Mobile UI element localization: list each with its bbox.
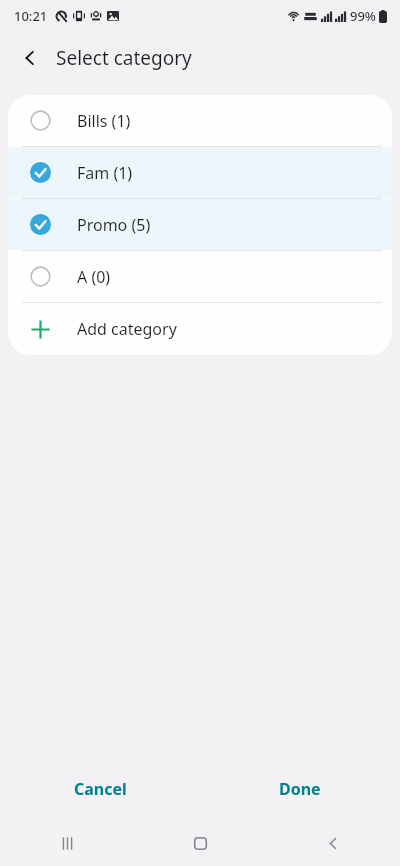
button[interactable]: Add category [8,303,392,355]
staticText: Fam (1) [77,162,133,184]
staticText: Cancel [74,778,127,800]
button[interactable]: Done [200,763,400,815]
staticText: Done [279,778,321,800]
staticText: Promo (5) [77,214,151,236]
button[interactable]: A (0) [8,251,392,302]
button[interactable]: Back [8,36,52,80]
button[interactable]: Cancel [0,763,200,815]
staticText: Select category [56,45,192,71]
staticText: 99% [350,7,376,25]
button[interactable]: Back [267,820,400,866]
button[interactable]: Promo (5) [8,199,392,250]
staticText: Add category [77,318,177,340]
staticText: Bills (1) [77,110,131,132]
button[interactable]: Home [134,820,267,866]
button[interactable]: Fam (1) [8,147,392,198]
staticText: A (0) [77,266,111,288]
button[interactable]: Bills (1) [8,95,392,146]
button[interactable]: Recents [0,820,134,866]
staticText: 10:21 [14,7,48,25]
